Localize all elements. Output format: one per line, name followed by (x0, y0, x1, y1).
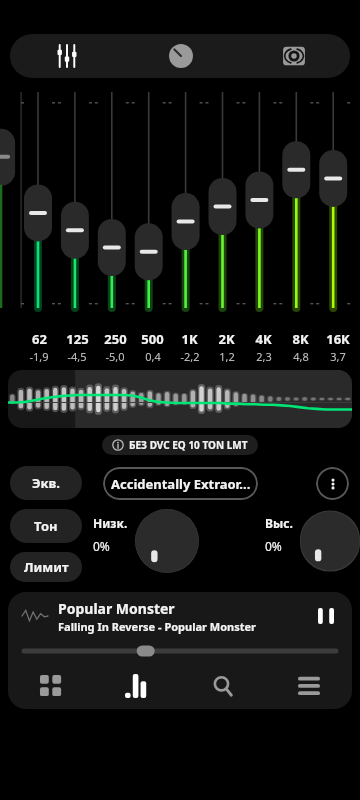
staticText: 125 (66, 330, 89, 348)
button[interactable]: Playback progress (24, 640, 336, 662)
staticText: 2K (218, 330, 235, 348)
button[interactable]: Menu (266, 662, 352, 709)
button[interactable]: БЕЗ DVC EQ 10 TON LMT (102, 435, 258, 455)
button[interactable]: More options (316, 467, 349, 500)
button[interactable]: Equalizer sliders (10, 34, 124, 78)
staticText: 2,3 (256, 349, 272, 364)
button[interactable]: Speaker output (237, 34, 350, 78)
staticText: Popular Monster (58, 599, 175, 618)
button[interactable]: Equalizer (94, 662, 180, 709)
button[interactable]: Popular Monster (8, 592, 352, 640)
button[interactable]: Search (180, 662, 266, 709)
button[interactable]: Экв. (10, 466, 82, 500)
staticText: Выс. (265, 515, 293, 531)
staticText: 1K (181, 330, 198, 348)
staticText: -4,5 (67, 349, 87, 364)
staticText: Accidentally Extraor... (111, 475, 251, 493)
staticText: 1,2 (219, 349, 235, 364)
button[interactable]: Низк. knob (135, 509, 199, 573)
staticText: 4K (255, 330, 272, 348)
staticText: Falling In Reverse - Popular Monster (58, 619, 257, 634)
staticText: 250 (104, 330, 127, 348)
staticText: -1,9 (29, 349, 49, 364)
button[interactable]: Лимит (10, 552, 82, 582)
button[interactable]: Tone knob (124, 34, 237, 78)
staticText: 500 (141, 330, 164, 348)
staticText: Лимит (24, 558, 69, 576)
staticText: 0,4 (145, 349, 161, 364)
staticText: 8K (292, 330, 309, 348)
button[interactable]: Equalizer bands (0, 78, 360, 330)
staticText: 3,7 (330, 349, 346, 364)
staticText: -2,2 (180, 349, 200, 364)
staticText: 4,8 (293, 349, 309, 364)
staticText: Экв. (32, 474, 60, 492)
button[interactable]: Accidentally Extraor... (103, 467, 258, 500)
button[interactable]: Grid (8, 662, 94, 709)
button[interactable]: Pause (306, 596, 346, 636)
staticText: БЕЗ DVC EQ 10 TON LMT (129, 438, 248, 452)
button[interactable]: Выс. knob (300, 509, 360, 573)
staticText: 0% (93, 538, 110, 554)
staticText: Низк. (93, 515, 128, 531)
staticText: 62 (32, 330, 47, 348)
staticText: -5,0 (105, 349, 125, 364)
staticText: Тон (34, 517, 58, 535)
button[interactable]: Тон (10, 509, 82, 543)
button[interactable]: Spectrum analyzer (8, 370, 352, 428)
staticText: 16K (326, 330, 350, 348)
staticText: 0% (265, 538, 282, 554)
